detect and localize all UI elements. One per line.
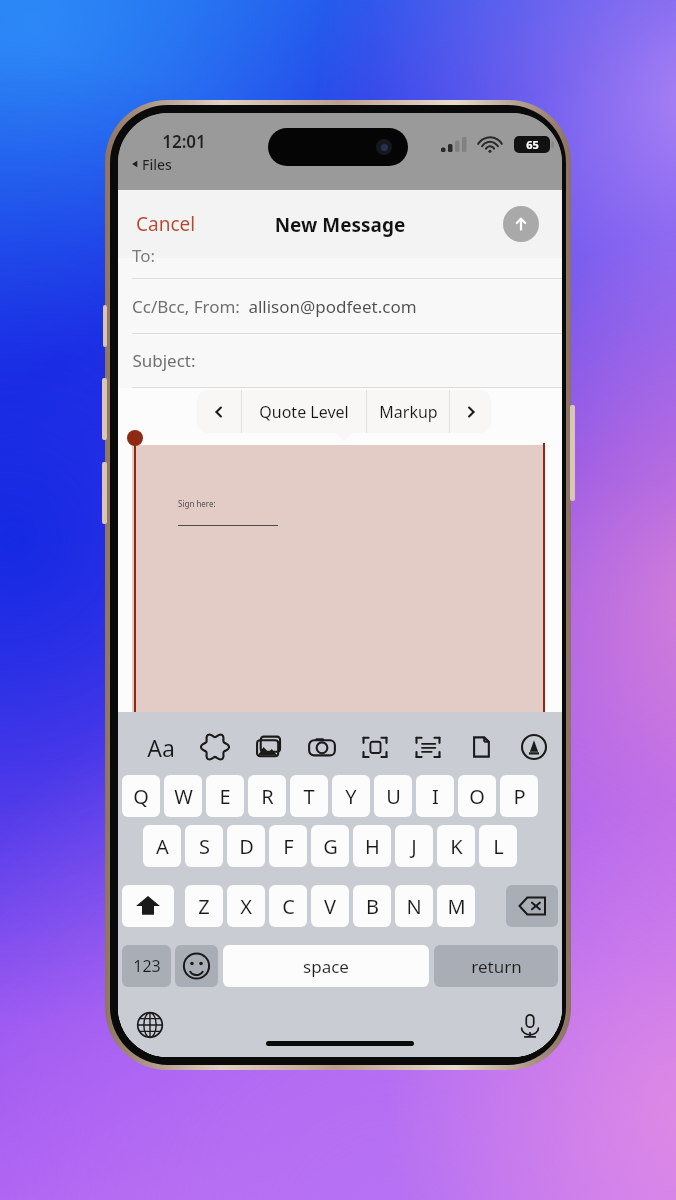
button[interactable]: return (434, 945, 558, 987)
button[interactable]: E (206, 775, 244, 817)
button[interactable]: Dictation (508, 1003, 552, 1047)
button[interactable]: U (374, 775, 412, 817)
staticText: Cancel (136, 211, 196, 237)
button[interactable]: L (479, 825, 517, 867)
button[interactable]: Previous (197, 390, 241, 433)
staticText: L (493, 833, 504, 860)
button[interactable]: Shift (122, 885, 174, 927)
button[interactable]: Files (128, 153, 172, 175)
staticText: M (447, 893, 466, 920)
button[interactable]: Q (122, 775, 160, 817)
button[interactable]: Cc/Bcc, From: (118, 279, 562, 333)
staticText: N (406, 893, 422, 920)
button[interactable]: Scan documents (352, 727, 398, 767)
button[interactable]: F (269, 825, 307, 867)
staticText: F (283, 833, 294, 860)
button[interactable]: G (311, 825, 349, 867)
button[interactable]: X (227, 885, 265, 927)
button[interactable]: Aa (138, 727, 184, 767)
button[interactable]: M (437, 885, 475, 927)
button[interactable]: N (395, 885, 433, 927)
button[interactable]: P (500, 775, 538, 817)
button[interactable]: B (353, 885, 391, 927)
staticText: C (282, 893, 295, 920)
staticText: 65 (526, 137, 539, 152)
button[interactable]: S (185, 825, 223, 867)
button[interactable]: space (223, 945, 429, 987)
button[interactable]: H (353, 825, 391, 867)
staticText: V (324, 893, 336, 920)
staticText: Z (198, 893, 210, 920)
staticText: O (469, 783, 485, 810)
staticText: W (174, 783, 193, 810)
staticText: 12:01 (154, 130, 214, 153)
staticText: Y (345, 783, 357, 810)
staticText: space (303, 955, 349, 978)
button[interactable]: Change keyboard (128, 1003, 172, 1047)
staticText: Aa (147, 732, 175, 763)
staticText: Sign here: (178, 498, 242, 509)
button[interactable]: D (227, 825, 265, 867)
staticText: return (471, 955, 522, 978)
staticText: X (240, 893, 252, 920)
staticText: E (219, 783, 231, 810)
button[interactable]: Subject: (118, 334, 562, 387)
button[interactable]: More (450, 390, 491, 433)
staticText: G (323, 833, 338, 860)
button[interactable]: Markup (511, 727, 557, 767)
staticText: Subject: (132, 349, 196, 372)
button[interactable]: Camera (299, 727, 345, 767)
staticText: U (386, 783, 401, 810)
staticText: To: (132, 244, 172, 267)
button[interactable]: C (269, 885, 307, 927)
staticText: Markup (379, 401, 438, 423)
button[interactable]: Cancel (130, 203, 224, 245)
staticText: A (156, 833, 169, 860)
staticText: T (303, 783, 315, 810)
staticText: allison@podfeet.com (248, 295, 417, 318)
button[interactable]: W (164, 775, 202, 817)
button[interactable]: Markup (367, 390, 449, 433)
staticText: Cc/Bcc, From: (132, 295, 240, 318)
button[interactable]: R (248, 775, 286, 817)
staticText: S (199, 833, 210, 860)
button[interactable]: K (437, 825, 475, 867)
staticText: I (432, 783, 439, 810)
button[interactable]: Scan text (405, 727, 451, 767)
button[interactable]: J (395, 825, 433, 867)
staticText: New Message (240, 212, 440, 238)
button[interactable]: Backspace (506, 885, 558, 927)
button[interactable]: A (143, 825, 181, 867)
staticText: J (411, 833, 417, 860)
staticText: Quote Level (259, 401, 349, 423)
button[interactable]: Emoji (175, 945, 218, 987)
staticText: R (261, 783, 274, 810)
staticText: D (239, 833, 254, 860)
staticText: P (513, 783, 526, 810)
button[interactable]: I (416, 775, 454, 817)
button[interactable]: Y (332, 775, 370, 817)
staticText: K (450, 833, 463, 860)
button[interactable]: Z (185, 885, 223, 927)
staticText: 123 (133, 955, 161, 977)
button[interactable]: T (290, 775, 328, 817)
staticText: H (365, 833, 380, 860)
staticText: Files (142, 155, 172, 174)
button[interactable]: Apps (192, 727, 238, 767)
button[interactable]: V (311, 885, 349, 927)
button[interactable]: Send (503, 206, 539, 242)
staticText: Q (133, 783, 149, 810)
button[interactable]: 123 (122, 945, 171, 987)
staticText: B (366, 893, 379, 920)
button[interactable]: Attach file (458, 727, 504, 767)
button[interactable]: Quote Level (242, 390, 366, 433)
button[interactable]: O (458, 775, 496, 817)
button[interactable]: Photos (246, 727, 292, 767)
